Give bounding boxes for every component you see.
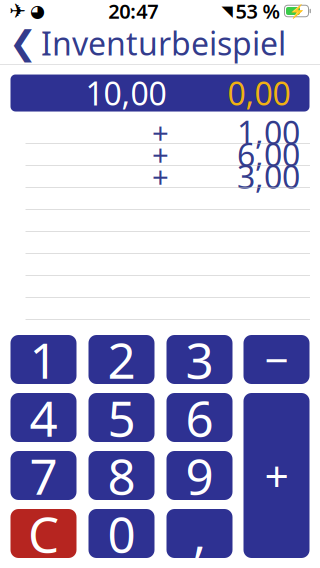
staticText: 4	[29, 385, 57, 450]
staticText: 3,00	[237, 155, 300, 197]
button[interactable]: ,	[166, 509, 232, 558]
button[interactable]	[0, 187, 320, 209]
staticText: ⚡	[288, 3, 305, 19]
staticText	[292, 177, 300, 219]
button[interactable]: ❮	[0, 22, 296, 64]
staticText: 6,00	[237, 133, 300, 175]
staticText: Inventurbeispiel	[41, 22, 286, 64]
staticText: +	[152, 135, 169, 174]
button[interactable]	[0, 297, 320, 319]
staticText	[292, 243, 300, 285]
staticText: 20:47	[108, 0, 158, 24]
staticText: ◥	[221, 3, 232, 19]
staticText: ,	[193, 501, 206, 566]
staticText: C	[28, 501, 59, 566]
button[interactable]: +	[0, 143, 320, 165]
staticText	[184, 201, 192, 240]
staticText: 5	[107, 385, 135, 450]
button[interactable]: 0	[88, 509, 154, 558]
staticText: 0	[107, 501, 135, 566]
staticText: 7	[29, 443, 57, 508]
staticText	[292, 199, 300, 241]
button[interactable]: Plus	[243, 393, 309, 558]
staticText	[184, 223, 192, 262]
staticText: +	[152, 157, 169, 196]
staticText: 10,00	[85, 72, 166, 114]
button[interactable]: 8	[88, 451, 154, 500]
staticText: ◕	[30, 1, 45, 21]
button[interactable]	[0, 253, 320, 275]
button[interactable]	[0, 231, 320, 253]
staticText	[292, 221, 300, 263]
staticText: +	[152, 113, 169, 152]
button[interactable]: +	[0, 121, 320, 143]
staticText: 9	[185, 443, 213, 508]
staticText	[184, 267, 192, 306]
button[interactable]	[0, 209, 320, 231]
button[interactable]	[0, 275, 320, 297]
staticText: 1	[29, 327, 57, 392]
button[interactable]: C	[10, 509, 76, 558]
staticText	[184, 289, 192, 328]
staticText: 53 %	[235, 0, 280, 24]
button[interactable]: 9	[166, 451, 232, 500]
staticText: ✈	[9, 0, 26, 22]
button[interactable]: 3	[166, 335, 232, 384]
staticText: −	[264, 331, 288, 388]
staticText: 1,00	[237, 111, 300, 153]
button[interactable]: 7	[10, 451, 76, 500]
staticText: ❮	[9, 24, 37, 62]
button[interactable]: 2	[88, 335, 154, 384]
staticText: 3	[185, 327, 213, 392]
staticText: 8	[107, 443, 135, 508]
button[interactable]: 4	[10, 393, 76, 442]
staticText	[184, 179, 192, 218]
button[interactable]: 6	[166, 393, 232, 442]
staticText	[184, 245, 192, 284]
button[interactable]: Minus	[243, 335, 309, 384]
staticText: 0,00	[227, 72, 290, 114]
staticText	[292, 265, 300, 307]
staticText: 6	[185, 385, 213, 450]
button[interactable]: 5	[88, 393, 154, 442]
staticText: 2	[107, 327, 135, 392]
button[interactable]: +	[0, 165, 320, 187]
staticText: +	[264, 447, 288, 504]
button[interactable]: 1	[10, 335, 76, 384]
staticText	[292, 287, 300, 329]
